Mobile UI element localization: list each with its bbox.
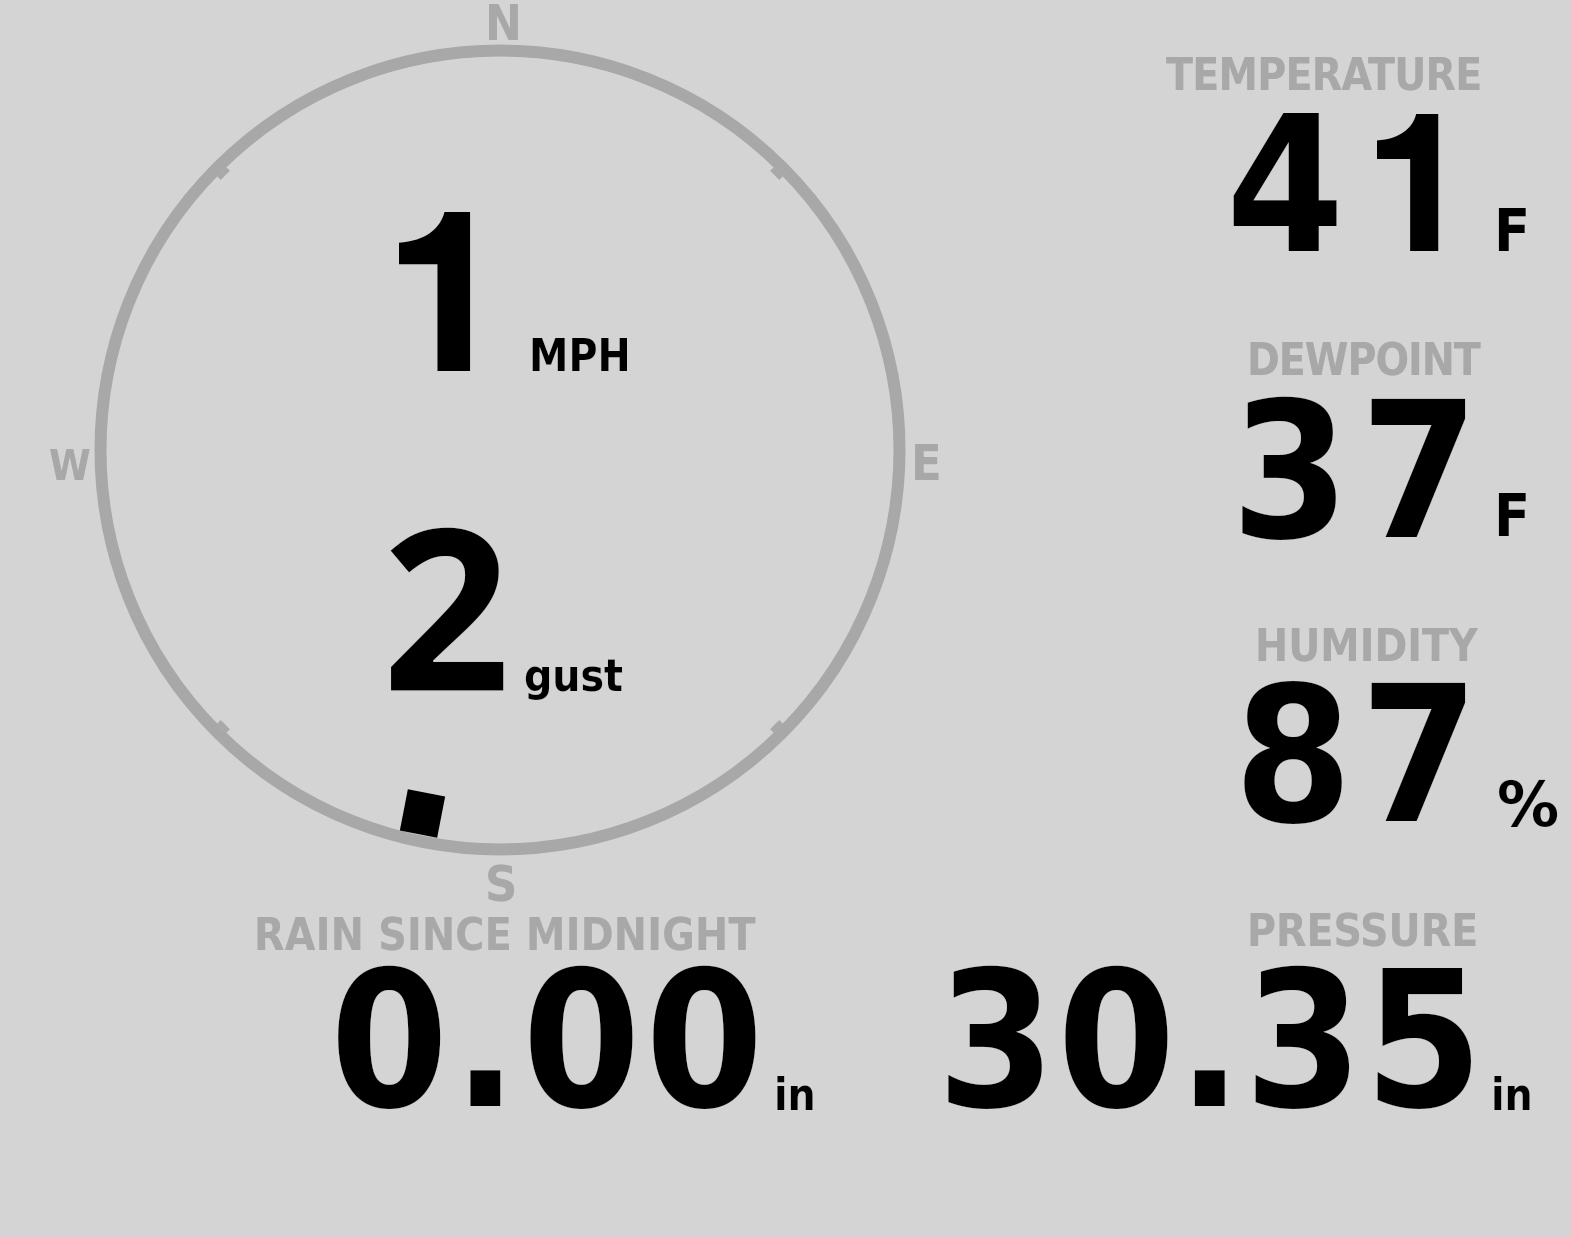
staticText: DEWPOINT — [1247, 334, 1480, 385]
staticText: gust — [524, 650, 624, 701]
staticText: E — [911, 434, 942, 492]
staticText: HUMIDITY — [1255, 620, 1478, 671]
staticText: 30.35 — [937, 931, 1485, 1151]
staticText: W — [49, 441, 91, 490]
staticText: % — [1497, 768, 1560, 840]
staticText: 4 — [1226, 76, 1345, 296]
staticText: 2 — [382, 450, 511, 756]
staticText: N — [485, 0, 522, 52]
staticText: S — [485, 855, 518, 913]
staticText: F — [1494, 196, 1531, 265]
staticText: in — [774, 1069, 816, 1120]
staticText: MPH — [529, 330, 631, 381]
button[interactable]: Pressure 30.35 in — [900, 890, 1571, 1140]
button[interactable]: Temperature 41 degrees F — [1120, 30, 1571, 280]
staticText: 87 — [1234, 646, 1487, 866]
button[interactable]: Rain since midnight 0.00 in — [150, 890, 880, 1140]
staticText: 37 — [1231, 362, 1490, 582]
staticText: RAIN SINCE MIDNIGHT — [254, 909, 756, 960]
staticText: in — [1491, 1069, 1533, 1120]
staticText: F — [1494, 481, 1531, 550]
staticText: 0.00 — [330, 931, 769, 1151]
button[interactable]: Humidity 87 percent — [1120, 596, 1571, 850]
staticText: PRESSURE — [1247, 905, 1479, 956]
staticText: TEMPERATURE — [1166, 49, 1482, 100]
button[interactable]: Dewpoint 37 degrees F — [1120, 310, 1571, 565]
button[interactable]: Wind 1 mph gusting 2, compass — [60, 10, 960, 880]
